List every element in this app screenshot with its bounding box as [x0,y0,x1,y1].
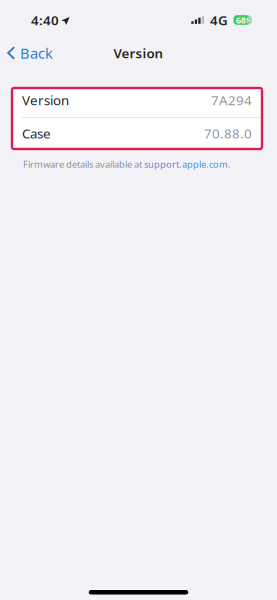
staticText: Back [20,43,53,63]
staticText: 4:40 [31,11,59,29]
staticText: . [228,158,231,170]
staticText: Version [113,44,163,62]
staticText: Firmware details available at [23,158,144,170]
staticText: support.apple.com [144,158,228,170]
button[interactable]: Case [12,118,262,149]
button[interactable]: support.apple.com [144,158,228,170]
button[interactable]: Back [0,40,62,66]
staticText: Version [22,91,69,109]
staticText: 7A294 [211,91,252,109]
staticText: Case [22,124,51,142]
staticText: 68 [236,14,246,26]
staticText: 4G [210,11,228,29]
button[interactable]: Version [12,88,262,117]
staticText: 70.88.0 [204,124,252,142]
